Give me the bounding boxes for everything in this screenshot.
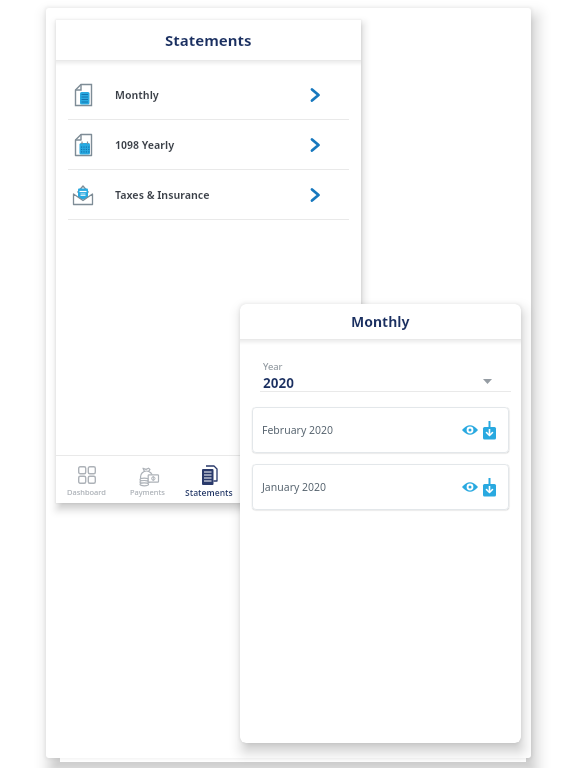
button[interactable]: 1098 Yearly [56,120,361,169]
staticText: Monthly [115,88,159,102]
staticText: Payments [130,487,165,497]
button[interactable]: January 2020 [252,464,509,510]
button[interactable]: February 2020 [252,407,509,453]
button[interactable]: Payments [117,456,178,503]
button[interactable] [482,478,497,497]
staticText: 1098 Yearly [115,138,175,152]
staticText: Year [263,360,283,373]
staticText: January 2020 [262,480,327,494]
staticText: Taxes & Insurance [115,188,210,202]
button[interactable] [462,422,478,438]
button[interactable]: Monthly [56,70,361,119]
button[interactable] [482,421,497,440]
button[interactable] [462,479,478,495]
button[interactable]: Dashboard [56,456,117,503]
button[interactable]: Year [240,340,521,391]
staticText: February 2020 [262,423,333,437]
staticText: Statements [165,30,252,50]
staticText: Monthly [351,312,410,331]
staticText: 2020 [263,374,294,391]
button[interactable]: Statements [178,456,239,503]
staticText: Statements [185,487,233,499]
button[interactable]: Taxes & Insurance [56,170,361,219]
staticText: Dashboard [67,487,106,497]
